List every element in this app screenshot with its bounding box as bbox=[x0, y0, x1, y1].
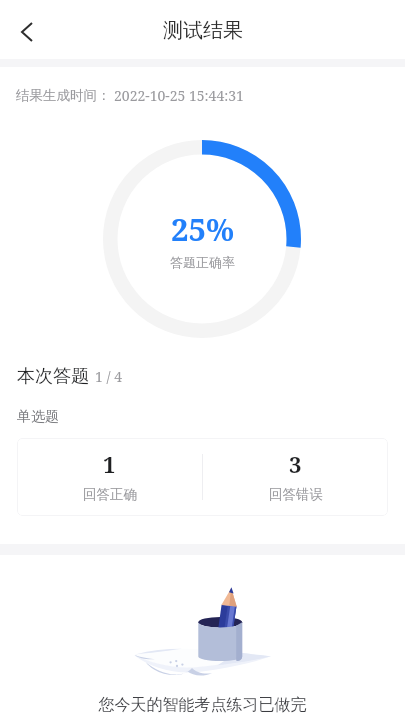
staticText: 测试结果 bbox=[163, 18, 243, 43]
staticText: 结果生成时间： bbox=[16, 87, 111, 104]
button[interactable]: 3 bbox=[203, 438, 388, 516]
button[interactable]: Back bbox=[0, 7, 46, 53]
staticText: 25% bbox=[171, 208, 235, 250]
button[interactable]: 1 bbox=[17, 438, 202, 516]
staticText: 答题正确率 bbox=[170, 254, 235, 270]
staticText: 1 bbox=[103, 449, 116, 479]
staticText: 回答错误 bbox=[269, 486, 323, 503]
staticText: 您今天的智能考点练习已做完 bbox=[0, 695, 405, 715]
staticText: 本次答题 bbox=[17, 365, 89, 388]
staticText: 单选题 bbox=[17, 408, 59, 426]
staticText: 回答正确 bbox=[83, 486, 137, 503]
staticText: 1 / 4 bbox=[95, 367, 122, 386]
staticText: 2022-10-25 15:44:31 bbox=[114, 86, 244, 105]
staticText: 3 bbox=[289, 449, 302, 479]
